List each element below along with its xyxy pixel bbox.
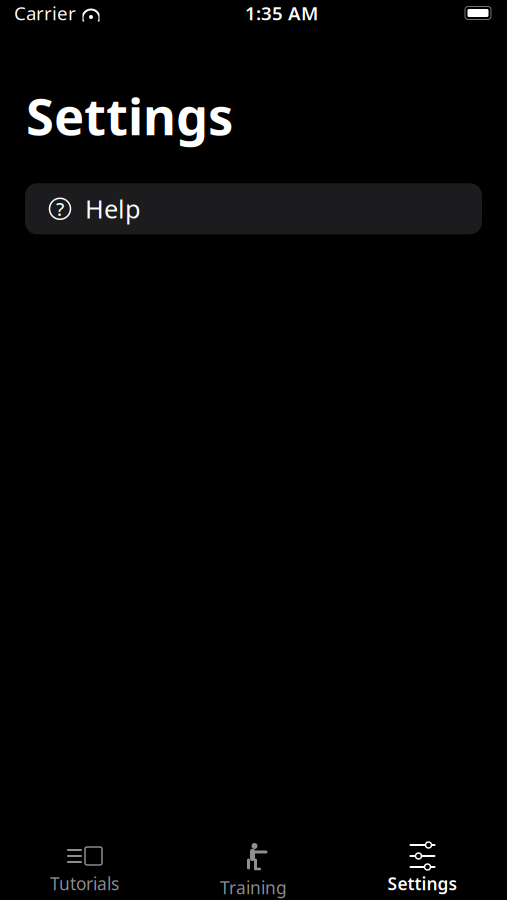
- button[interactable]: ?: [25, 183, 482, 234]
- button[interactable]: Settings: [338, 839, 507, 900]
- staticText: Settings: [26, 82, 233, 149]
- staticText: Training: [220, 876, 287, 899]
- staticText: Tutorials: [50, 872, 119, 895]
- staticText: ?: [56, 196, 64, 221]
- staticText: Help: [85, 192, 141, 226]
- staticText: Carrier: [14, 1, 76, 25]
- button[interactable]: Tutorials: [0, 839, 169, 900]
- button[interactable]: Training: [169, 835, 338, 900]
- staticText: Settings: [387, 872, 457, 895]
- staticText: 1:35 AM: [245, 1, 318, 25]
